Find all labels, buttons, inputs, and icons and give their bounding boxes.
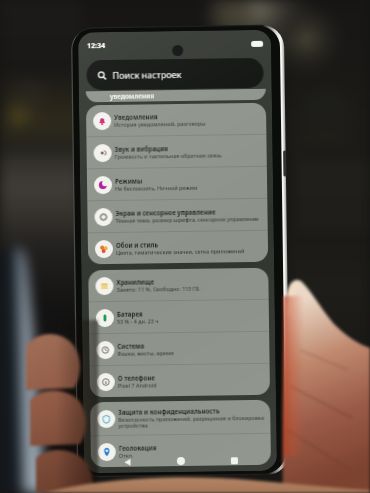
staticText: Система	[117, 341, 144, 350]
staticText: Тёмная тема, размер шрифта, сенсорное уп…	[115, 215, 260, 224]
staticText: История уведомлений, разговоры	[114, 120, 206, 128]
button[interactable]: Система	[89, 332, 270, 365]
button[interactable]: Home	[170, 450, 192, 472]
staticText: Уведомления	[114, 112, 158, 121]
staticText: Не беспокоить, Ночной режим	[115, 184, 198, 192]
staticText: Громкость и тактильная обратная связь	[115, 151, 223, 160]
button[interactable]: Батарея	[89, 300, 269, 333]
staticText: 12:34	[87, 41, 105, 51]
button[interactable]: Уведомления	[86, 103, 266, 136]
button[interactable]: Защита и конфиденциальность	[90, 400, 270, 435]
button[interactable]: Recent apps	[223, 449, 245, 471]
staticText: Защита и конфиденциальность	[118, 406, 220, 416]
staticText: Откл.	[119, 452, 134, 459]
staticText: уведомления	[110, 91, 155, 101]
staticText: Батарея	[117, 309, 143, 318]
staticText: Цвета, тематические значки, сетка прилож…	[116, 247, 245, 256]
staticText: Обои и стиль	[116, 240, 159, 249]
button[interactable]: Экран и сенсорное управление	[87, 199, 268, 232]
staticText: Режимы	[115, 176, 143, 185]
staticText: Безопасность приложений, разрешения и бл…	[118, 414, 265, 430]
button[interactable]: Режимы	[87, 167, 267, 200]
button[interactable]: Геолокация	[91, 434, 271, 467]
staticText: Экран и сенсорное управление	[115, 207, 216, 217]
staticText: Языки, жесты, время	[117, 349, 174, 357]
button[interactable]: Back	[116, 451, 138, 473]
staticText: Геолокация	[119, 443, 157, 452]
staticText: Занято: 11 %. Свободно: 113 ГБ.	[116, 285, 201, 293]
button[interactable]: Хранилище	[88, 268, 269, 301]
staticText: 53 % - 4 дн. 23 ч	[117, 317, 159, 325]
button[interactable]: Обои и стиль	[88, 231, 268, 264]
staticText: О телефоне	[118, 373, 156, 382]
button[interactable]: О телефоне	[90, 364, 270, 397]
staticText: Pixel 7 Android	[118, 381, 157, 389]
staticText: Хранилище	[116, 277, 154, 286]
staticText: Поиск настроек	[112, 68, 182, 81]
staticText: Звук и вибрация	[114, 144, 169, 153]
button[interactable]: Звук и вибрация	[86, 135, 267, 168]
button[interactable]: Поиск настроек	[86, 58, 264, 90]
